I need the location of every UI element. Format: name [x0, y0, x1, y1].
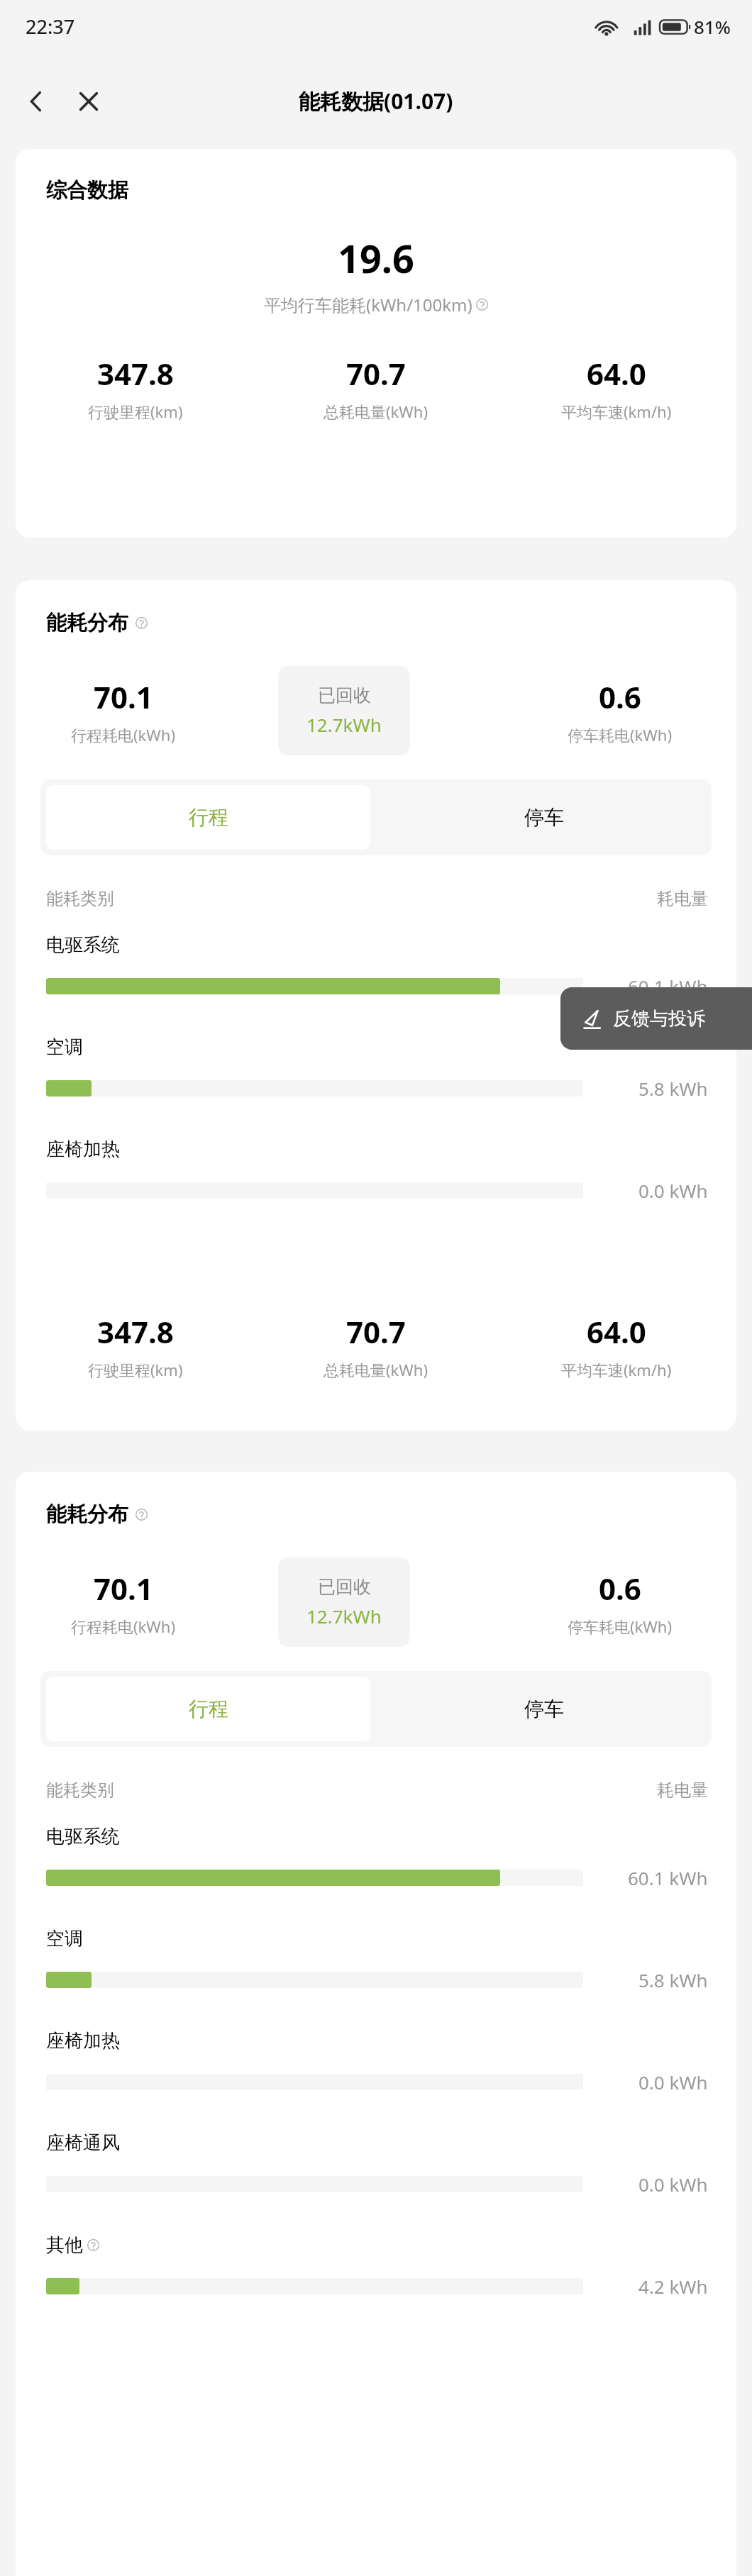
button[interactable]: Close [65, 78, 112, 125]
other: More info [87, 2239, 99, 2251]
button[interactable]: 能耗分布 [16, 1472, 736, 2576]
staticText: 座椅加热 [46, 1138, 120, 1161]
button[interactable]: 停车 [376, 1671, 712, 1747]
staticText: 平均车速(km/h) [561, 401, 672, 422]
staticText: 耗电量 [657, 888, 708, 909]
staticText: 0.0 kWh [638, 1178, 708, 1203]
staticText: 12.7kWh [306, 1604, 382, 1628]
button[interactable]: 反馈与投诉 [560, 987, 752, 1050]
button[interactable]: 已回收 [278, 1558, 410, 1647]
staticText: 70.1 [94, 677, 153, 717]
button[interactable]: 行程 [46, 785, 370, 850]
button[interactable]: 已回收 [278, 666, 410, 755]
staticText: 空调 [46, 1927, 83, 1950]
staticText: 座椅加热 [46, 2029, 120, 2053]
staticText: 64.0 [587, 353, 646, 394]
staticText: 已回收 [318, 1576, 371, 1598]
staticText: 总耗电量(kWh) [324, 1359, 428, 1380]
staticText: 347.8 [97, 353, 174, 394]
staticText: 行程 [189, 805, 228, 830]
staticText: 座椅通风 [46, 2131, 120, 2155]
staticText: 能耗分布 [46, 610, 128, 636]
staticText: 平均行车能耗(kWh/100km) [264, 293, 472, 316]
staticText: 81% [694, 14, 731, 39]
staticText: 能耗类别 [46, 1780, 114, 1801]
staticText: 22:37 [26, 13, 75, 40]
button[interactable]: Back [13, 78, 60, 125]
staticText: 耗电量 [657, 1780, 708, 1801]
staticText: 0.0 kWh [638, 2172, 708, 2197]
staticText: 已回收 [318, 684, 371, 706]
staticText: 70.7 [346, 1311, 406, 1352]
other: More info [136, 617, 148, 629]
staticText: 行程耗电(kWh) [71, 1616, 176, 1637]
button[interactable]: 综合数据 [16, 149, 736, 538]
staticText: 60.1 kWh [628, 974, 708, 999]
staticText: 能耗数据(01.07) [299, 87, 453, 116]
staticText: 停车 [524, 1697, 564, 1721]
staticText: 行程耗电(kWh) [71, 724, 176, 745]
staticText: 能耗分布 [46, 1501, 128, 1528]
staticText: 19.6 [338, 232, 414, 284]
staticText: 其他 [46, 2233, 83, 2257]
staticText: 64.0 [587, 1311, 646, 1352]
staticText: 总耗电量(kWh) [324, 401, 428, 422]
staticText: 停车耗电(kWh) [568, 724, 673, 745]
staticText: 反馈与投诉 [613, 1007, 705, 1031]
staticText: 12.7kWh [306, 712, 382, 737]
staticText: 4.2 kWh [638, 2274, 708, 2299]
staticText: 60.1 kWh [628, 1865, 708, 1890]
staticText: 70.7 [346, 353, 406, 394]
staticText: 5.8 kWh [638, 1076, 708, 1101]
button[interactable]: 行程 [46, 1677, 370, 1741]
staticText: 行驶里程(km) [88, 1359, 183, 1380]
button[interactable]: 停车 [376, 779, 712, 855]
staticText: 停车 [524, 805, 564, 830]
staticText: 电驱系统 [46, 933, 120, 957]
staticText: 行程 [189, 1697, 228, 1721]
staticText: 5.8 kWh [638, 1967, 708, 1992]
staticText: 停车耗电(kWh) [568, 1616, 673, 1637]
staticText: 70.1 [94, 1568, 153, 1609]
staticText: 综合数据 [46, 177, 128, 204]
staticText: 能耗类别 [46, 888, 114, 909]
button[interactable]: 能耗分布 [16, 580, 736, 1431]
staticText: 0.6 [599, 677, 641, 717]
staticText: 0.6 [599, 1568, 641, 1609]
other: More info [476, 299, 488, 311]
staticText: 行驶里程(km) [88, 401, 183, 422]
staticText: 电驱系统 [46, 1825, 120, 1848]
other: More info [136, 1509, 148, 1521]
staticText: 347.8 [97, 1311, 174, 1352]
staticText: 空调 [46, 1036, 83, 1059]
staticText: 0.0 kWh [638, 2070, 708, 2094]
staticText: 平均车速(km/h) [561, 1359, 672, 1380]
